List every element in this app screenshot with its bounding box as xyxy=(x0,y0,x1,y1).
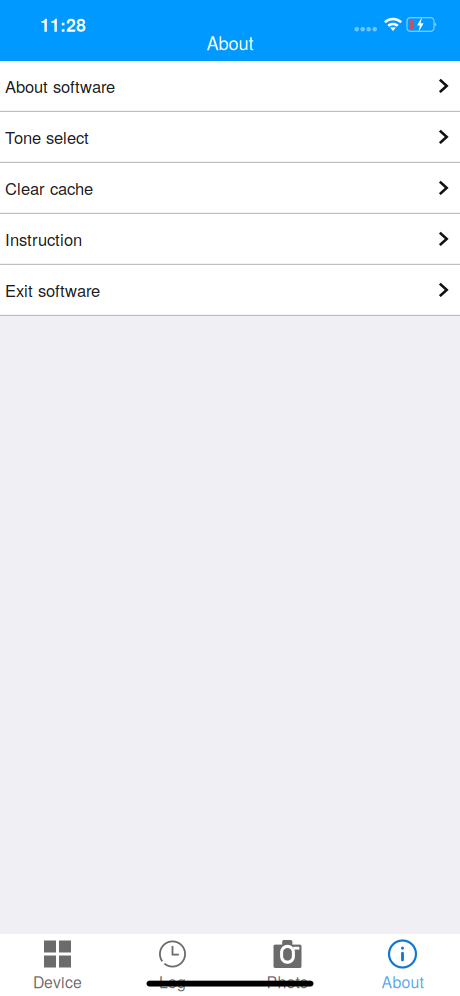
button[interactable]: Device xyxy=(0,934,115,996)
button[interactable]: Tone select xyxy=(0,112,460,163)
staticText: Instruction xyxy=(5,227,82,251)
button[interactable]: Instruction xyxy=(0,214,460,265)
staticText: Clear cache xyxy=(5,176,93,200)
button[interactable]: About software xyxy=(0,61,460,112)
button[interactable]: About xyxy=(345,934,460,996)
staticText: About xyxy=(381,970,423,993)
staticText: Log xyxy=(159,970,186,993)
staticText: Photo xyxy=(266,970,308,993)
staticText: Device xyxy=(33,970,82,993)
button[interactable]: Clear cache xyxy=(0,163,460,214)
button[interactable]: Photo xyxy=(230,934,345,996)
button[interactable]: Log xyxy=(115,934,230,996)
staticText: About software xyxy=(5,74,115,98)
staticText: About xyxy=(206,29,253,55)
staticText: 11:28 xyxy=(40,12,86,37)
staticText: Exit software xyxy=(5,278,100,302)
staticText: Tone select xyxy=(5,125,89,149)
button[interactable]: Exit software xyxy=(0,265,460,316)
